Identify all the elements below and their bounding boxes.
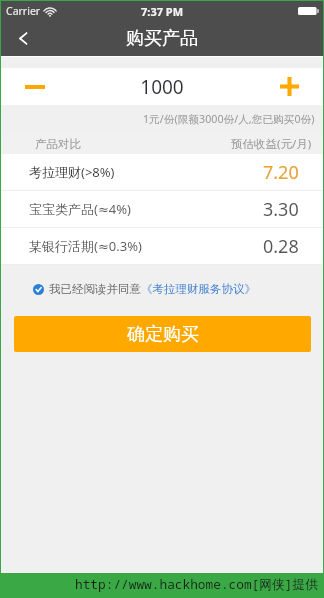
staticText: 《考拉理财服务协议》 [141, 282, 256, 296]
staticText: 1元/份(限额3000份/人,您已购买0份) [143, 112, 315, 127]
button[interactable]: 考拉理财(>8%) [29, 154, 299, 190]
button[interactable]: Back [1, 21, 45, 56]
staticText: 宝宝类产品(≈4%) [29, 200, 131, 218]
staticText: 3.30 [263, 197, 299, 222]
button[interactable]: Decrease quantity [1, 68, 69, 105]
staticText: http://www.hackhome.com[网侠]提供 [75, 575, 319, 592]
staticText: 购买产品 [126, 27, 198, 50]
staticText: 考拉理财(>8%) [29, 163, 115, 181]
button[interactable]: 我已经阅读并同意 [33, 282, 323, 296]
staticText: 1000 [69, 74, 255, 100]
staticText: Carrier [6, 4, 41, 18]
button[interactable]: 宝宝类产品(≈4%) [29, 191, 299, 227]
staticText: 我已经阅读并同意 [49, 282, 141, 296]
button[interactable]: Increase quantity [255, 68, 323, 105]
staticText: 某银行活期(≈0.3%) [29, 237, 142, 255]
button[interactable]: 确定购买 [14, 316, 311, 352]
staticText: 7:37 PM [141, 4, 184, 19]
staticText: 0.28 [263, 234, 299, 259]
staticText: 预估收益(元/月) [231, 136, 312, 152]
staticText: 确定购买 [127, 323, 199, 346]
staticText: 7.20 [263, 160, 299, 185]
staticText: 产品对比 [35, 137, 81, 151]
button[interactable]: 某银行活期(≈0.3%) [29, 228, 299, 264]
